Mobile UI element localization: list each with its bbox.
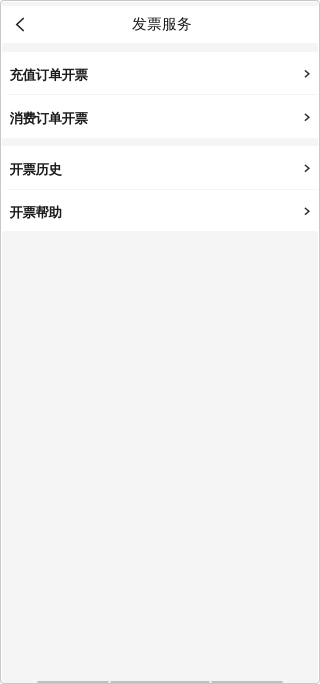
button[interactable]: 消费订单开票: [2, 95, 318, 138]
staticText: 消费订单开票: [9, 110, 87, 127]
staticText: 发票服务: [132, 15, 192, 33]
staticText: 充值订单开票: [9, 67, 87, 83]
button[interactable]: 开票帮助: [2, 190, 318, 231]
staticText: 开票帮助: [9, 204, 61, 221]
staticText: 开票历史: [9, 161, 61, 178]
button[interactable]: 开票历史: [2, 146, 318, 189]
button[interactable]: 充值订单开票: [2, 52, 318, 94]
button[interactable]: Back: [2, 6, 38, 43]
